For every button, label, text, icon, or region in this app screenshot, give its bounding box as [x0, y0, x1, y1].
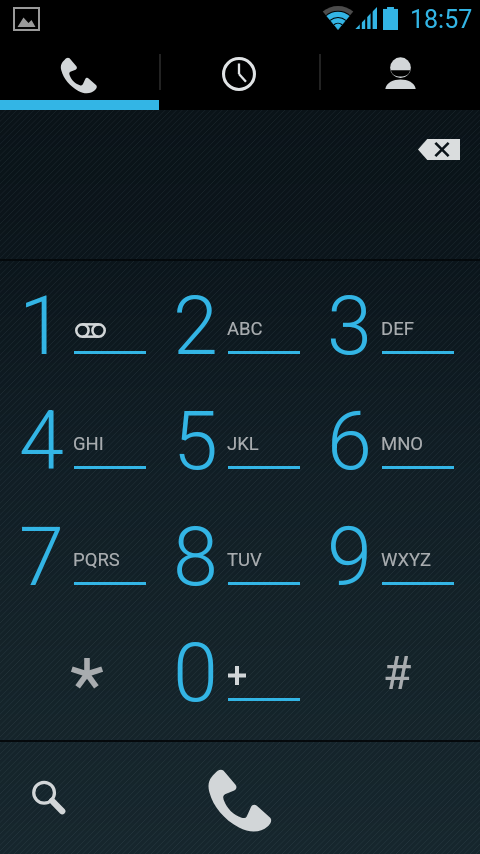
staticText: MNO — [381, 433, 424, 455]
staticText: DEF — [381, 318, 414, 340]
staticText: 1 — [19, 279, 64, 374]
staticText: 0 — [173, 626, 218, 721]
staticText: 3 — [327, 279, 372, 374]
button[interactable]: Contacts — [320, 36, 480, 110]
button[interactable]: Call — [198, 758, 283, 839]
staticText: TUV — [227, 549, 262, 571]
staticText: 18:57 — [410, 5, 473, 34]
staticText: PQRS — [73, 549, 120, 571]
staticText: ABC — [227, 318, 263, 340]
staticText: # — [383, 646, 412, 700]
button[interactable]: 6 — [317, 382, 471, 498]
staticText: GHI — [73, 433, 104, 455]
button[interactable]: Dialer — [0, 36, 160, 110]
button[interactable]: 9 — [317, 498, 471, 614]
staticText: JKL — [227, 433, 259, 455]
staticText: 6 — [327, 394, 372, 489]
staticText: 9 — [327, 510, 372, 605]
staticText: 2 — [173, 279, 218, 374]
staticText: WXYZ — [381, 549, 432, 571]
staticText: 5 — [173, 394, 218, 489]
button[interactable]: Call history — [160, 36, 320, 110]
button[interactable]: 1 — [9, 267, 163, 383]
button[interactable]: 5 — [163, 382, 317, 498]
button[interactable]: Search — [14, 766, 82, 828]
button[interactable]: 4 — [9, 382, 163, 498]
button[interactable]: 3 — [317, 267, 471, 383]
staticText: 4 — [19, 394, 64, 489]
button[interactable]: Backspace — [418, 139, 460, 160]
staticText: 7 — [19, 510, 64, 605]
button[interactable]: 8 — [163, 498, 317, 614]
button[interactable]: Star — [9, 614, 163, 730]
button[interactable]: 7 — [9, 498, 163, 614]
button[interactable]: 2 — [163, 267, 317, 383]
button[interactable]: Pound — [317, 614, 471, 730]
button[interactable]: 0 — [163, 614, 317, 730]
staticText: 8 — [173, 510, 218, 605]
